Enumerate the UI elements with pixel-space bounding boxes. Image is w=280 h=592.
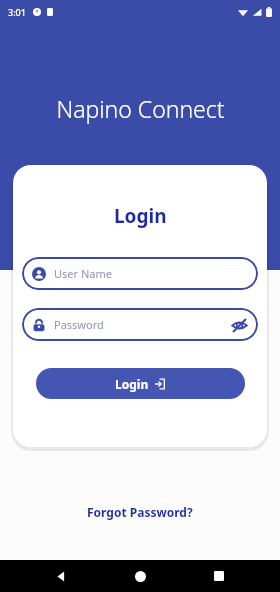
button[interactable]: Back — [43, 560, 79, 592]
button[interactable]: Recent apps — [201, 560, 237, 592]
button[interactable]: User Name — [22, 257, 258, 290]
button[interactable]: Home — [122, 560, 158, 592]
button[interactable]: Show password — [228, 314, 250, 336]
staticText: 3:01 — [8, 6, 26, 18]
staticText: Password — [54, 317, 104, 332]
staticText: Login — [115, 376, 149, 392]
staticText: Forgot Password? — [87, 504, 193, 520]
staticText: Login — [114, 203, 167, 229]
button[interactable]: Forgot Password? — [79, 500, 201, 524]
button[interactable]: Login — [36, 368, 245, 399]
button[interactable]: Password — [22, 308, 258, 341]
staticText: User Name — [54, 266, 112, 281]
staticText: Napino Connect — [56, 93, 225, 124]
